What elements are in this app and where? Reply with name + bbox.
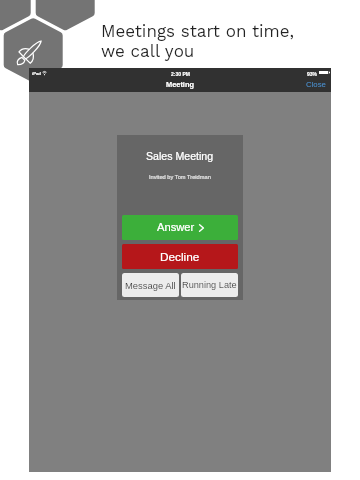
staticText: Message All: [125, 280, 176, 291]
staticText: Meetings start on time, we call you: [101, 21, 295, 61]
staticText: iPad: [32, 71, 41, 76]
staticText: Decline: [160, 250, 200, 263]
staticText: Invited by Tom Treidman: [149, 174, 211, 180]
staticText: Close: [306, 80, 326, 89]
staticText: Running Late: [182, 280, 237, 290]
staticText: Meeting: [166, 80, 194, 88]
button[interactable]: Running Late: [181, 273, 238, 297]
button[interactable]: Close: [306, 68, 331, 92]
button[interactable]: Answer: [122, 215, 238, 240]
button[interactable]: Message All: [122, 273, 179, 297]
staticText: 93%: [307, 71, 318, 77]
staticText: Answer: [157, 221, 195, 234]
staticText: 2:30 PM: [171, 71, 190, 77]
button[interactable]: Decline: [122, 244, 238, 269]
staticText: Sales Meeting: [146, 150, 214, 162]
